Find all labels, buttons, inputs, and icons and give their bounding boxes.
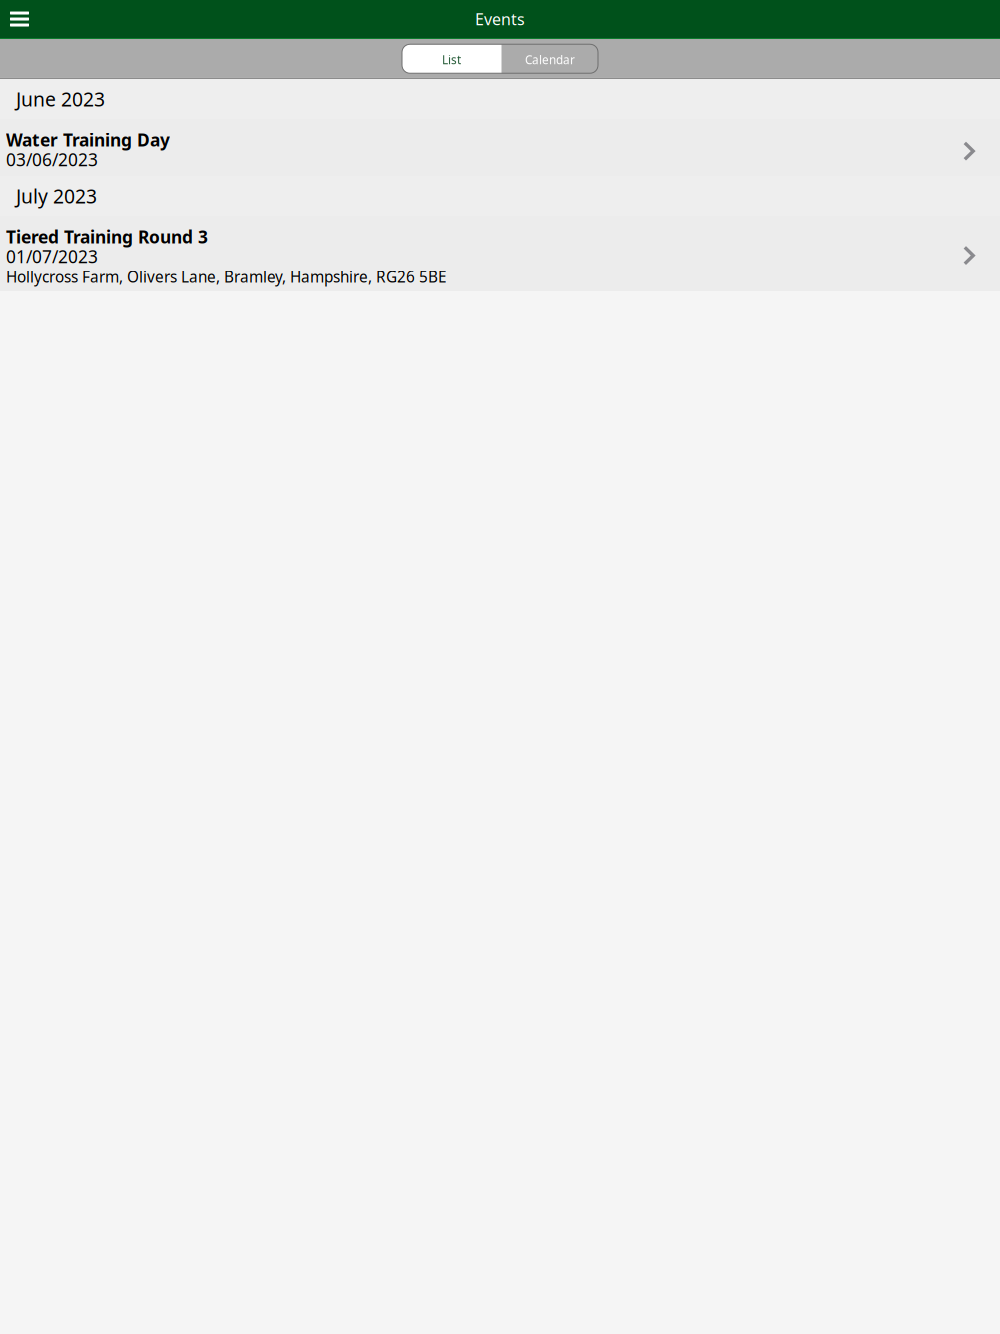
button[interactable]: Water Training Day (0, 119, 1000, 176)
button[interactable]: Calendar (501, 44, 598, 73)
staticText: June 2023 (16, 86, 105, 112)
staticText: List (442, 52, 461, 68)
button[interactable]: Menu (0, 0, 41, 38)
staticText: Tiered Training Round 3 (6, 225, 208, 249)
staticText: 01/07/2023 (6, 245, 98, 268)
staticText: Calendar (525, 52, 575, 68)
button[interactable]: List (401, 44, 501, 73)
staticText: July 2023 (16, 183, 97, 209)
staticText: Events (475, 8, 525, 30)
button[interactable]: Tiered Training Round 3 (0, 216, 1000, 291)
staticText: 03/06/2023 (6, 148, 98, 171)
staticText: Hollycross Farm, Olivers Lane, Bramley, … (6, 266, 447, 287)
staticText: Water Training Day (6, 128, 170, 152)
